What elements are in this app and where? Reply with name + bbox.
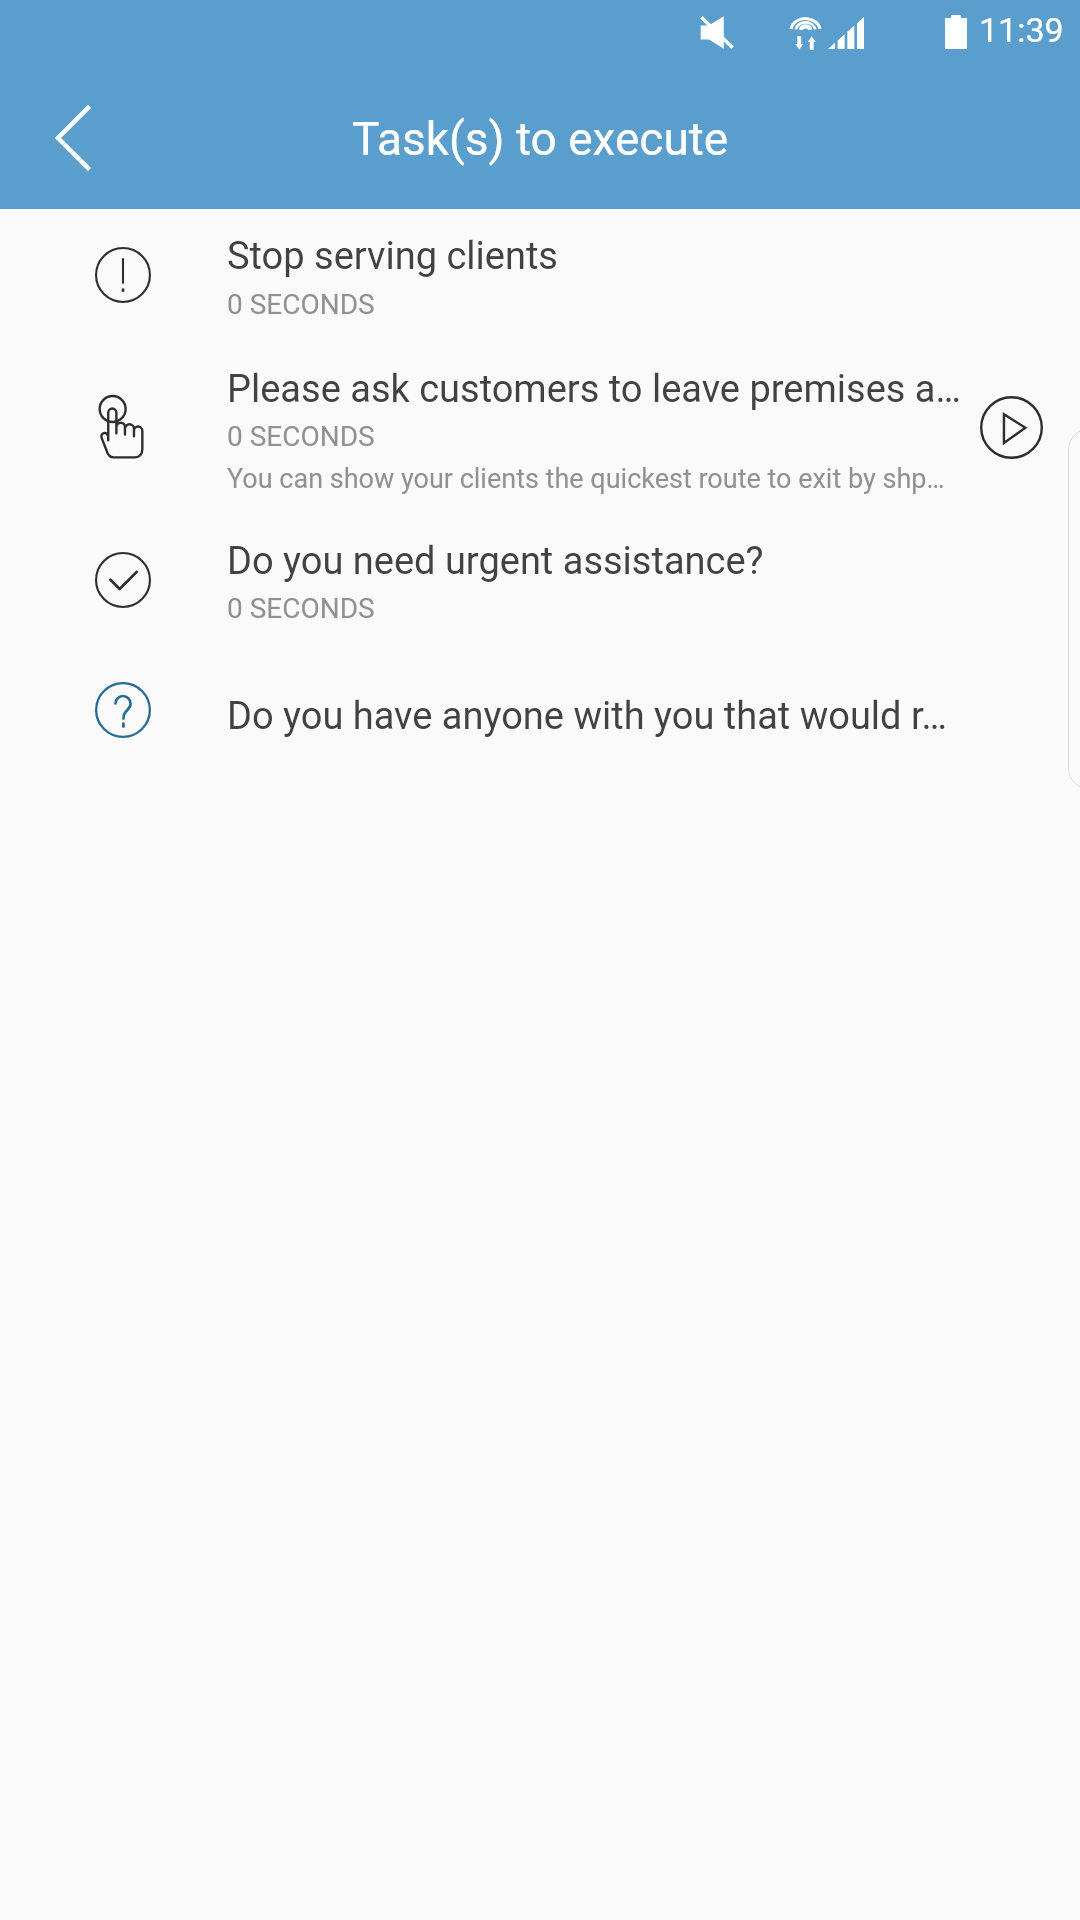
staticText: Do you need urgent assistance?	[227, 539, 987, 584]
button[interactable]: Do you need urgent assistance?	[0, 524, 1080, 644]
button[interactable]: Stop serving clients	[0, 219, 1080, 339]
button[interactable]: Back	[32, 92, 112, 184]
button[interactable]: Play	[972, 388, 1050, 466]
button[interactable]: Please ask customers to leave premises a…	[0, 348, 1080, 508]
staticText: You can show your clients the quickest r…	[227, 463, 987, 495]
staticText: 11:39	[979, 10, 1064, 50]
staticText: 0 SECONDS	[227, 592, 987, 625]
staticText: Do you have anyone with you that would r…	[227, 694, 987, 739]
staticText: 0 SECONDS	[227, 420, 987, 453]
staticText: Stop serving clients	[227, 234, 987, 279]
staticText: 0 SECONDS	[227, 288, 987, 321]
staticText: Please ask customers to leave premises a…	[227, 367, 987, 412]
button[interactable]: Do you have anyone with you that would r…	[0, 654, 1080, 766]
staticText: Task(s) to execute	[352, 112, 729, 166]
